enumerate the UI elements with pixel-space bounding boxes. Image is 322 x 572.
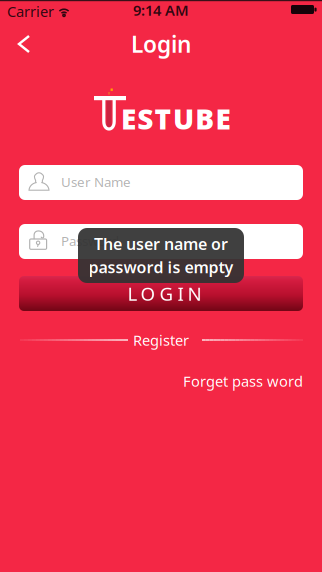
- staticText: User Name: [61, 173, 131, 191]
- button[interactable]: Forget pass word: [183, 371, 303, 391]
- staticText: Password: [61, 232, 119, 250]
- staticText: password is empty: [88, 256, 233, 278]
- staticText: 9:14 AM: [133, 0, 189, 20]
- staticText: The user name or: [94, 233, 228, 254]
- staticText: Carrier: [7, 1, 54, 21]
- staticText: ESTUBE: [121, 100, 230, 137]
- button[interactable]: Password: [19, 224, 303, 259]
- staticText: LOGIN: [127, 281, 201, 306]
- button[interactable]: LOGIN: [19, 276, 303, 311]
- staticText: Forget pass word: [183, 371, 303, 391]
- button[interactable]: Register: [131, 330, 191, 350]
- staticText: Register: [133, 330, 189, 350]
- staticText: Login: [131, 29, 191, 59]
- button[interactable]: User Name: [19, 165, 303, 200]
- button[interactable]: Back: [2, 22, 46, 66]
